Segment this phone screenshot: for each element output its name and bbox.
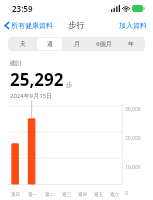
button[interactable]: 天: [10, 38, 35, 50]
staticText: 週五: [94, 192, 103, 198]
button[interactable]: 年: [118, 38, 143, 50]
staticText: 6個月: [96, 40, 112, 48]
staticText: 週六: [110, 192, 119, 198]
staticText: 20,000: [125, 135, 141, 142]
staticText: 0: [125, 190, 128, 197]
button[interactable]: 週: [37, 38, 62, 50]
staticText: 年: [128, 40, 134, 48]
staticText: 步: [66, 81, 73, 89]
staticText: 25,292: [10, 68, 64, 91]
staticText: 天: [20, 40, 26, 48]
button[interactable]: 月: [64, 38, 89, 50]
staticText: 週日: [11, 192, 20, 198]
button[interactable]: 6個月: [91, 38, 116, 50]
staticText: 10,000: [125, 164, 141, 171]
staticText: 30,000: [125, 106, 141, 113]
staticText: 總計: [10, 59, 22, 67]
staticText: 2024年9月15日: [10, 92, 53, 100]
button[interactable]: 所有健康資料: [0, 19, 57, 32]
staticText: 步行: [68, 20, 85, 31]
staticText: 週四: [78, 192, 87, 198]
button[interactable]: 加入資料: [113, 19, 153, 32]
staticText: 月: [74, 40, 80, 48]
staticText: 週三: [62, 192, 71, 198]
staticText: 23:59: [12, 3, 33, 14]
staticText: 所有健康資料: [11, 21, 53, 30]
staticText: 週二: [45, 192, 54, 198]
staticText: 週: [47, 40, 53, 48]
staticText: 週一: [28, 192, 37, 198]
